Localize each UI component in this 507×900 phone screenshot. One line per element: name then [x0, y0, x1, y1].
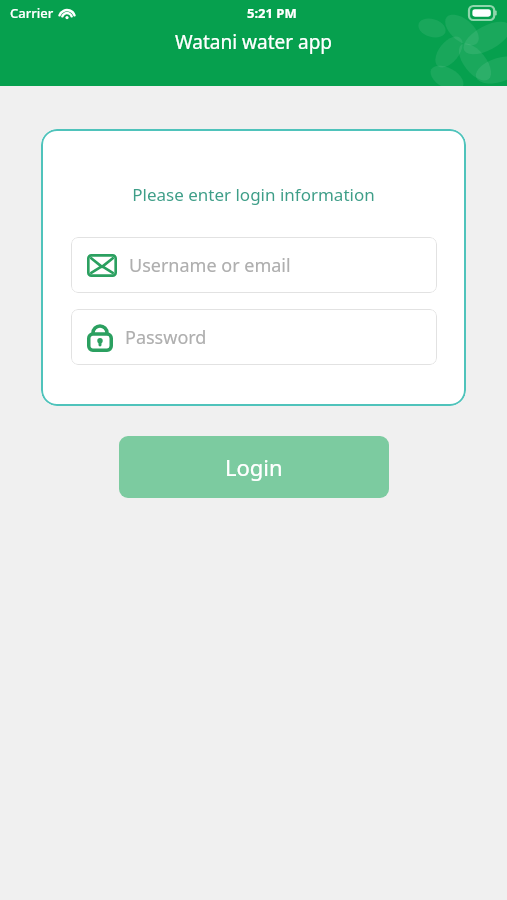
staticText: Carrier — [10, 4, 54, 22]
staticText: 5:21 PM — [247, 4, 297, 22]
staticText: Password — [125, 325, 207, 350]
other: Email — [87, 254, 117, 277]
button[interactable]: Login — [119, 436, 389, 498]
staticText: Watani water app — [175, 29, 333, 55]
staticText: Username or email — [129, 253, 291, 278]
other: Password — [87, 322, 113, 352]
button[interactable]: Password — [71, 309, 437, 365]
staticText: Please enter login information — [132, 183, 375, 206]
staticText: Login — [225, 452, 283, 482]
button[interactable]: Email — [71, 237, 437, 293]
